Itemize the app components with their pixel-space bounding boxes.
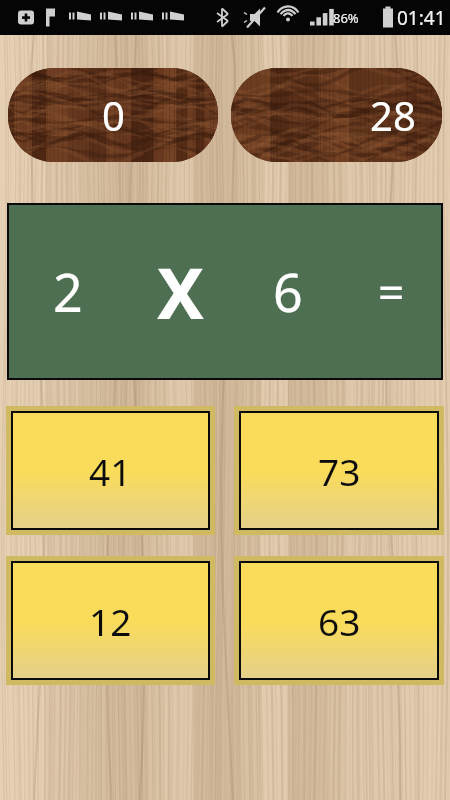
staticText: 86% xyxy=(333,9,359,27)
button[interactable]: 41 xyxy=(6,406,215,535)
staticText: 63 xyxy=(318,596,361,646)
button[interactable]: 28 xyxy=(231,68,442,162)
button[interactable]: 63 xyxy=(234,556,444,685)
staticText: 01:41 xyxy=(397,5,446,31)
staticText: 2 xyxy=(53,256,83,327)
button[interactable]: 12 xyxy=(6,556,215,685)
staticText: X xyxy=(157,244,204,339)
staticText: 28 xyxy=(370,88,416,142)
button[interactable]: 73 xyxy=(234,406,444,535)
staticText: 41 xyxy=(89,446,132,496)
staticText: 12 xyxy=(89,596,132,646)
staticText: 6 xyxy=(273,256,303,327)
staticText: = xyxy=(378,260,405,323)
button[interactable]: 2 xyxy=(9,205,441,378)
staticText: 0 xyxy=(102,88,125,142)
button[interactable]: 0 xyxy=(8,68,218,162)
staticText: 73 xyxy=(318,446,361,496)
